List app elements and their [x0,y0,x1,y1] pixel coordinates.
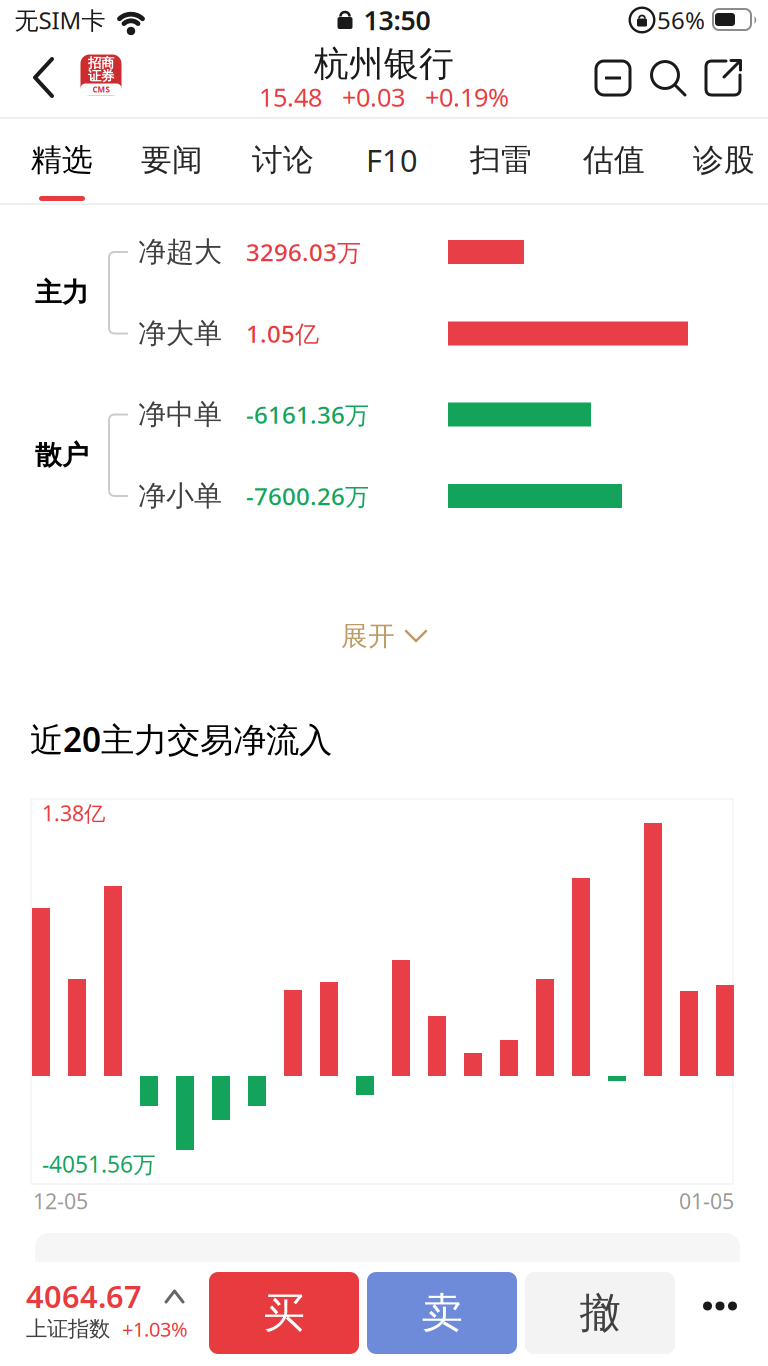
staticText: 近20主力交易净流入 [30,717,332,761]
staticText: 1.05亿 [246,318,319,349]
staticText: CMS [92,84,109,95]
button[interactable]: 讨论 [231,125,335,195]
staticText: 散户 [35,439,89,471]
button[interactable]: Search [649,59,687,97]
staticText: 杭州银行 [314,43,454,85]
staticText: F10 [366,140,418,180]
staticText: 12-05 [33,1187,88,1215]
staticText: 1.38亿 [42,799,105,827]
button[interactable]: Back [34,58,53,97]
staticText: 展开 [341,620,395,652]
staticText: 无SIM卡 [14,4,105,36]
staticText: 估值 [583,141,645,179]
staticText: 上证指数 [26,1316,110,1342]
staticText: 净超大 [138,235,222,269]
button[interactable]: 估值 [562,125,666,195]
button[interactable]: 买 [209,1272,359,1354]
button[interactable]: 要闻 [120,125,224,195]
staticText: 56% [657,4,705,36]
staticText: 精选 [31,141,93,179]
staticText: -4051.56万 [42,1149,156,1179]
staticText: +1.03% [122,1316,188,1342]
button[interactable]: F10 [340,125,444,195]
staticText: 主力 [35,276,89,309]
staticText: 买 [263,1288,304,1338]
staticText: 诊股 [693,141,755,179]
staticText: 净大单 [138,316,222,351]
staticText: 净中单 [138,397,222,432]
staticText: 4064.67 [26,1276,142,1316]
staticText: 要闻 [141,141,203,179]
button[interactable]: 诊股 [672,125,768,195]
button[interactable]: Minimize [596,61,630,95]
button[interactable]: 精选 [10,125,114,195]
button[interactable]: 扫雷 [449,125,553,195]
staticText: 撤 [579,1288,620,1338]
staticText: 净小单 [138,479,222,513]
staticText: 15.48 [259,80,322,114]
staticText: 讨论 [252,141,314,179]
staticText: -7600.26万 [246,480,369,512]
staticText: 卖 [421,1288,462,1338]
staticText: 招商 [88,55,114,71]
staticText: 3296.03万 [246,236,361,268]
staticText: 13:50 [363,2,430,38]
staticText: +0.19% [425,80,509,114]
button[interactable]: 撤 [525,1272,675,1354]
staticText: 扫雷 [470,141,532,179]
button[interactable]: 上证指数 [0,1262,205,1366]
button[interactable]: More [690,1276,750,1336]
staticText: -6161.36万 [246,399,369,430]
button[interactable]: Share [704,59,742,97]
staticText: 证券 [88,68,114,84]
staticText: +0.03 [342,80,405,114]
staticText: 01-05 [679,1187,734,1215]
button[interactable]: 卖 [367,1272,517,1354]
button[interactable]: 展开 [294,606,474,666]
